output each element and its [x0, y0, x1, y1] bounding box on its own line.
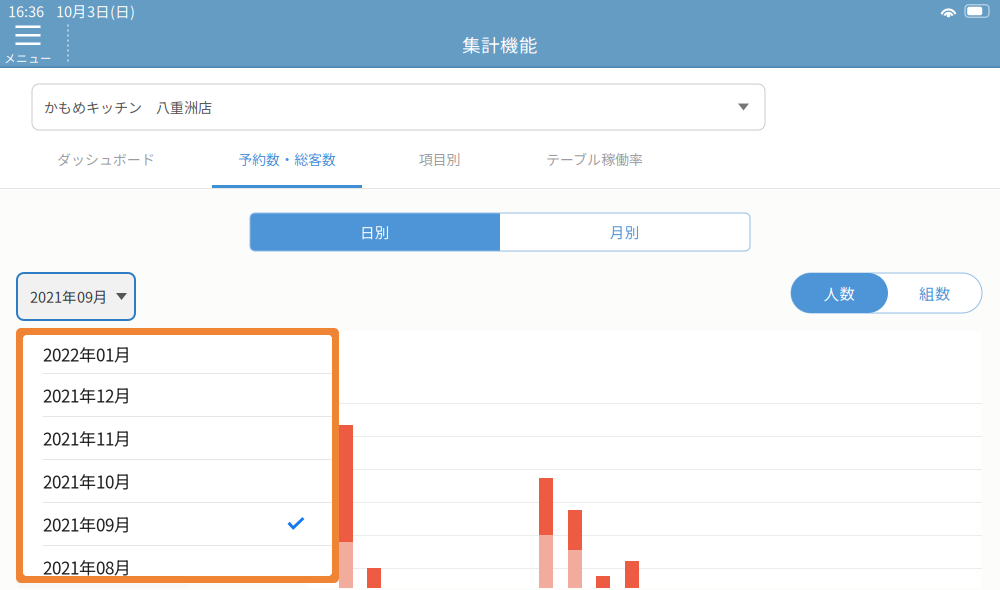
staticText: メニュー [4, 49, 52, 66]
staticText: 2022年01月 [43, 342, 131, 366]
staticText: 組数 [919, 282, 951, 304]
staticText: 2021年08月 [43, 555, 131, 579]
button[interactable]: メニュー [0, 22, 56, 66]
staticText: 集計機能 [462, 31, 538, 58]
button[interactable]: 2021年10月 [23, 460, 332, 503]
staticText: テーブル稼働率 [546, 149, 643, 169]
button[interactable]: 2021年09月 [23, 503, 332, 546]
staticText: 2021年09月 [30, 286, 108, 307]
button[interactable]: 日別 [250, 213, 500, 251]
staticText: 項目別 [418, 149, 460, 169]
button[interactable]: ダッシュボード [0, 140, 212, 188]
staticText: 2021年10月 [43, 469, 131, 493]
button[interactable]: 組数 [888, 273, 982, 313]
button[interactable]: 人数 [791, 273, 888, 313]
button[interactable]: 項目別 [362, 140, 517, 188]
staticText: 月別 [610, 221, 640, 242]
button[interactable]: 2021年09月 [17, 273, 135, 320]
button[interactable]: 予約数・総客数 [212, 140, 362, 188]
staticText: ダッシュボード [57, 149, 155, 169]
staticText: 2021年12月 [43, 383, 131, 407]
staticText: かもめキッチン 八重洲店 [44, 97, 212, 117]
staticText: 日別 [360, 221, 390, 242]
staticText: 10月3日(日) [56, 0, 135, 21]
staticText: 人数 [823, 282, 855, 304]
button[interactable]: 2022年01月 [23, 335, 332, 374]
button[interactable]: 2021年12月 [23, 374, 332, 417]
button[interactable]: 2021年11月 [23, 417, 332, 460]
button[interactable]: かもめキッチン 八重洲店 [32, 84, 765, 130]
button[interactable]: 月別 [500, 213, 750, 251]
button[interactable]: 2021年08月 [23, 546, 332, 589]
staticText: 2021年09月 [43, 512, 131, 536]
button[interactable]: テーブル稼働率 [517, 140, 672, 188]
staticText: 予約数・総客数 [238, 149, 336, 169]
staticText: 2021年11月 [43, 426, 131, 450]
staticText: 16:36 [8, 0, 44, 21]
